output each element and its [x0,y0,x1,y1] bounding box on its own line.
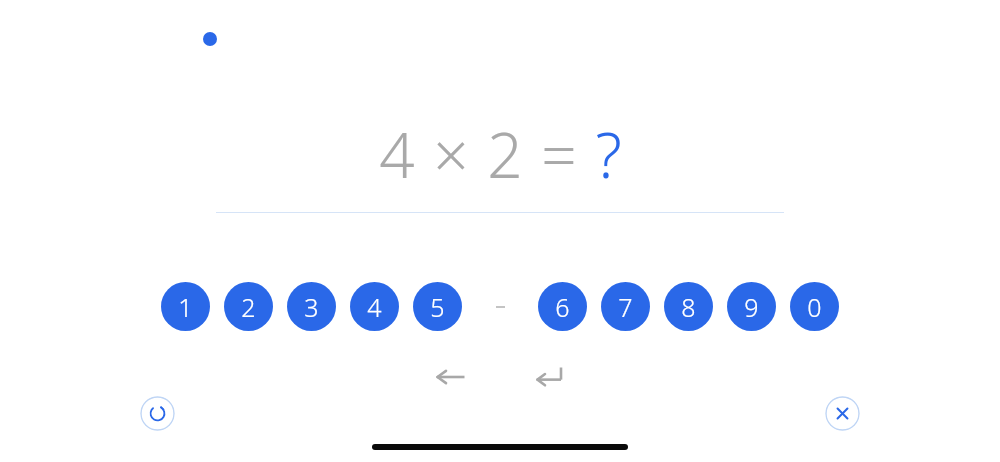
staticText: 8 [681,290,696,324]
button[interactable]: 7 [601,282,650,331]
staticText: 0 [807,290,822,324]
button[interactable]: Close [825,396,860,431]
staticText: ? [595,112,622,196]
button[interactable]: Status indicator [203,32,217,46]
button[interactable]: Enter [527,360,571,394]
button[interactable]: 6 [538,282,587,331]
staticText: 2 [487,112,523,196]
button[interactable]: 8 [664,282,713,331]
staticText: 9 [744,290,759,324]
button[interactable]: 9 [727,282,776,331]
staticText: 7 [618,290,633,324]
button[interactable]: Backspace [429,360,473,394]
staticText: × [433,112,469,196]
button[interactable]: 0 [790,282,839,331]
button[interactable]: Restart [140,396,175,431]
button[interactable]: 2 [224,282,273,331]
staticText: = [541,112,577,196]
staticText: 3 [304,290,319,324]
staticText: 4 [367,290,382,324]
button[interactable]: 3 [287,282,336,331]
staticText: 1 [178,290,193,324]
button[interactable]: 5 [413,282,462,331]
button[interactable]: 1 [161,282,210,331]
staticText: 6 [555,290,570,324]
staticText: 4 [379,112,415,196]
button[interactable]: 4 [350,282,399,331]
staticText: 5 [430,290,445,324]
staticText: 2 [241,290,256,324]
